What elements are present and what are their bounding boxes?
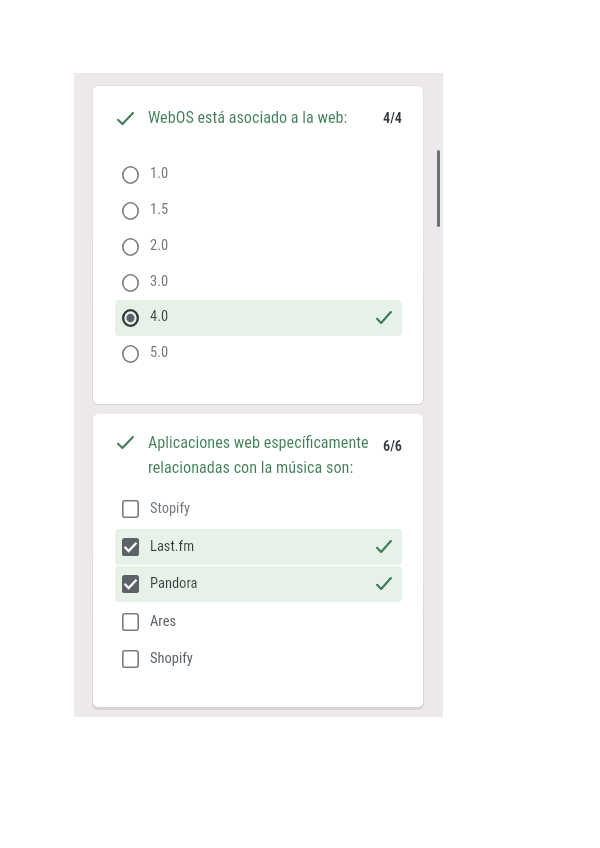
staticText: Shopify (150, 650, 193, 667)
staticText: 5.0 (150, 344, 169, 361)
button[interactable]: 4.0 (115, 300, 402, 336)
staticText: 2.0 (150, 237, 169, 254)
button[interactable]: 1.5 (115, 193, 402, 229)
button[interactable]: Ares (115, 604, 402, 640)
button[interactable]: 1.0 (115, 157, 402, 193)
staticText: 6/6 (383, 438, 403, 455)
button[interactable]: Shopify (115, 641, 402, 677)
button[interactable]: 5.0 (115, 336, 402, 372)
staticText: 4/4 (383, 110, 403, 127)
staticText: 4.0 (150, 308, 169, 325)
staticText: Last.fm (150, 538, 195, 555)
staticText: 3.0 (150, 273, 169, 290)
staticText: Aplicaciones web específicamente relacio… (148, 433, 369, 477)
button[interactable]: Last.fm (115, 529, 402, 565)
staticText: 1.0 (150, 165, 169, 182)
staticText: Ares (150, 613, 177, 630)
button[interactable]: Pandora (115, 566, 402, 602)
button[interactable]: 2.0 (115, 229, 402, 265)
other: Scroll position (437, 150, 440, 227)
staticText: Pandora (150, 575, 198, 592)
staticText: WebOS está asociado a la web: (148, 108, 348, 127)
button[interactable]: 3.0 (115, 265, 402, 301)
button[interactable]: Stopify (115, 491, 402, 527)
staticText: 1.5 (150, 201, 169, 218)
staticText: Stopify (150, 500, 191, 517)
